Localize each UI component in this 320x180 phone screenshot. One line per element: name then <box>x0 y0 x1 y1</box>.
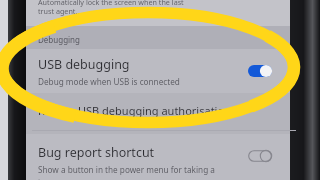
button[interactable]: Bug report shortcut <box>26 134 290 180</box>
staticText: Revoke USB debugging authorisations <box>38 103 237 118</box>
staticText: trust agent... <box>38 6 82 16</box>
staticText: Bug report shortcut <box>38 144 155 161</box>
button[interactable]: Toggle off <box>248 150 272 162</box>
button[interactable]: Automatically lock the screen when the l… <box>26 0 290 26</box>
staticText: Debug mode when USB is connected <box>38 76 180 87</box>
staticText: Show a button in the power menu for taki… <box>38 164 215 175</box>
staticText: USB debugging <box>38 56 130 73</box>
button[interactable]: USB debugging <box>26 49 290 93</box>
button[interactable]: Toggle on <box>248 65 272 77</box>
button[interactable]: Revoke USB debugging authorisations <box>26 93 290 123</box>
staticText: Automatically lock the screen when the l… <box>38 0 184 7</box>
staticText: Debugging <box>38 34 80 45</box>
